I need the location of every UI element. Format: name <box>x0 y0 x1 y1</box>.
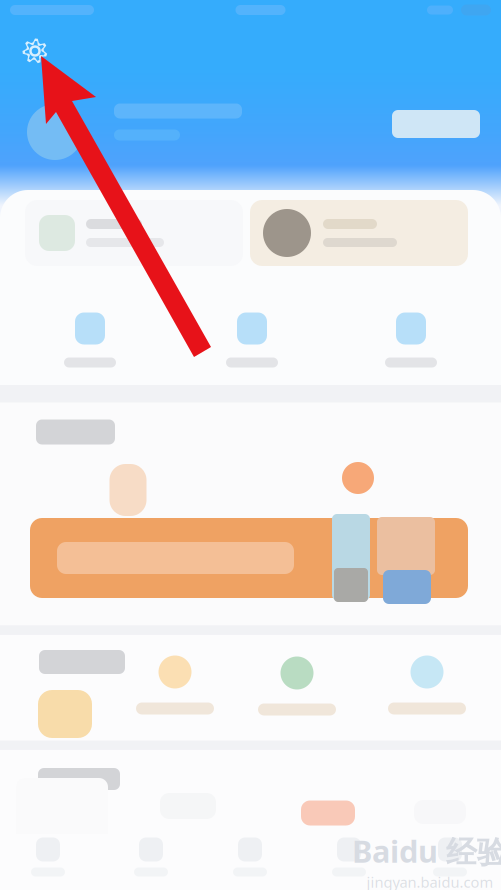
button[interactable] <box>372 655 482 714</box>
button[interactable] <box>242 656 352 715</box>
button[interactable] <box>336 312 486 367</box>
button[interactable]: Categories <box>103 829 199 885</box>
button[interactable]: Sale <box>301 800 355 825</box>
button[interactable]: Mine <box>402 829 498 885</box>
button[interactable] <box>120 655 230 714</box>
button[interactable]: Promotion <box>30 518 468 598</box>
staticText: jingyan.baidu.com <box>366 872 493 890</box>
button[interactable] <box>177 312 327 367</box>
button[interactable]: Featured <box>10 679 120 749</box>
button[interactable]: Membership <box>392 110 480 138</box>
button[interactable]: Profile photo <box>27 104 83 160</box>
button[interactable] <box>15 312 165 367</box>
button[interactable]: Home <box>0 829 96 885</box>
staticText: Baidu 经验 <box>352 830 501 872</box>
button[interactable] <box>25 200 243 266</box>
button[interactable]: Discover <box>202 829 298 885</box>
button[interactable]: Cart <box>301 829 397 885</box>
button[interactable]: Settings <box>12 28 58 74</box>
button[interactable] <box>250 200 468 266</box>
